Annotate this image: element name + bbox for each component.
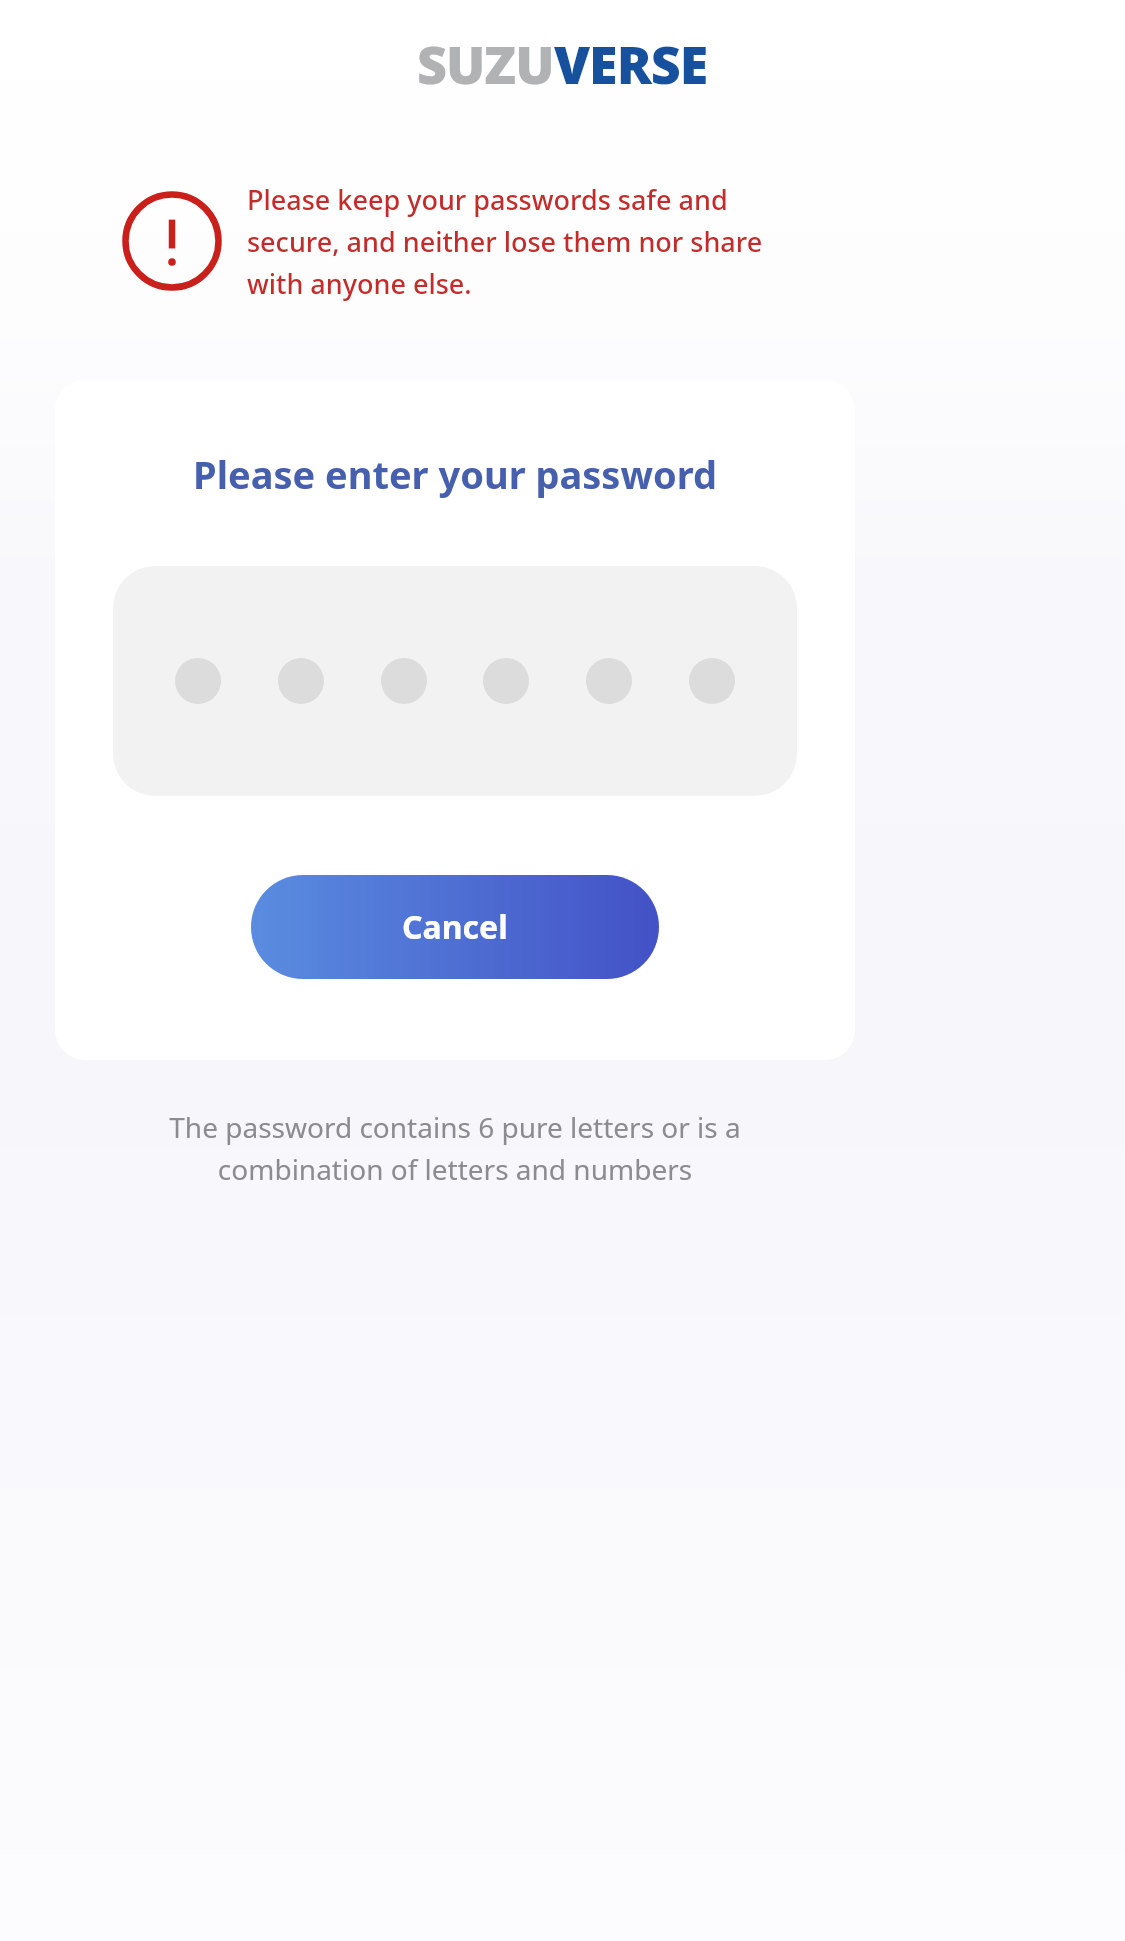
button[interactable]: Cancel <box>251 875 659 979</box>
staticText: SUZU <box>417 28 554 99</box>
staticText: VERSE <box>554 28 708 99</box>
staticText: The password contains 6 pure letters or … <box>130 1108 780 1188</box>
button[interactable]: Password entry <box>113 566 797 796</box>
staticText: Please enter your password <box>193 448 717 500</box>
other: Warning <box>122 191 222 291</box>
staticText: Cancel <box>402 905 508 949</box>
staticText: Please keep your passwords safe and secu… <box>247 181 775 302</box>
